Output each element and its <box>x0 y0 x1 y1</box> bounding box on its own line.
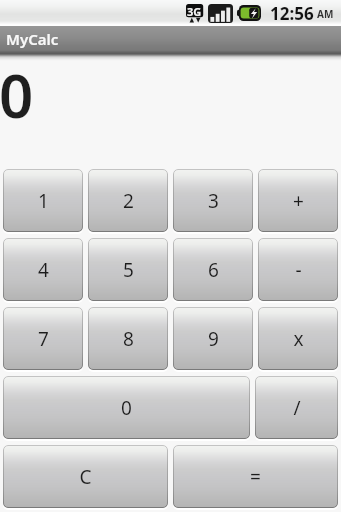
staticText: 2 <box>123 188 134 214</box>
staticText: x <box>293 326 304 352</box>
button[interactable]: x <box>258 307 338 370</box>
button[interactable]: 9 <box>173 307 253 370</box>
staticText: 8 <box>123 326 134 352</box>
button[interactable]: C <box>3 445 168 508</box>
staticText: 7 <box>38 326 49 352</box>
staticText: 0 <box>0 54 34 136</box>
button[interactable]: 5 <box>88 238 168 301</box>
button[interactable]: 4 <box>3 238 83 301</box>
staticText: C <box>79 464 92 490</box>
button[interactable]: = <box>173 445 338 508</box>
staticText: - <box>295 257 302 283</box>
button[interactable]: 3 <box>173 169 253 232</box>
button[interactable]: 2 <box>88 169 168 232</box>
staticText: / <box>293 395 301 421</box>
staticText: = <box>250 464 261 490</box>
staticText: + <box>293 188 304 214</box>
button[interactable]: MyCalc <box>0 26 341 54</box>
staticText: 5 <box>123 257 134 283</box>
button[interactable]: 6 <box>173 238 253 301</box>
staticText: 6 <box>208 257 219 283</box>
staticText: MyCalc <box>6 29 59 49</box>
staticText: 9 <box>208 326 219 352</box>
button[interactable]: 8 <box>88 307 168 370</box>
button[interactable]: 0 <box>3 376 250 439</box>
button[interactable]: - <box>258 238 338 301</box>
staticText: 1 <box>38 188 49 214</box>
staticText: AM <box>317 7 334 21</box>
button[interactable]: / <box>255 376 338 439</box>
staticText: 4 <box>38 257 49 283</box>
button[interactable]: + <box>258 169 338 232</box>
staticText: 0 <box>121 395 132 421</box>
staticText: 3G <box>187 4 202 19</box>
button[interactable]: 1 <box>3 169 83 232</box>
staticText: 3 <box>208 188 219 214</box>
button[interactable]: 7 <box>3 307 83 370</box>
staticText: 12:56 <box>270 2 314 25</box>
